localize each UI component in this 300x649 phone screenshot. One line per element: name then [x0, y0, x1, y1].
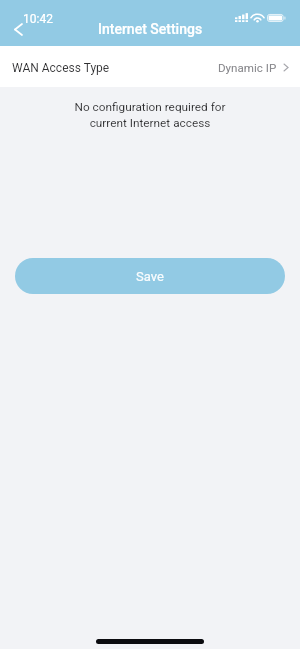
- staticText: WAN Access Type: [12, 61, 110, 75]
- staticText: 10:42: [23, 12, 53, 26]
- button[interactable]: Back: [7, 18, 30, 41]
- button[interactable]: Save: [15, 258, 285, 294]
- button[interactable]: WAN Access Type: [0, 46, 300, 87]
- staticText: Save: [136, 269, 164, 284]
- staticText: Dynamic IP: [218, 61, 277, 75]
- staticText: Internet Settings: [98, 21, 203, 37]
- staticText: No configuration required for current In…: [0, 100, 300, 130]
